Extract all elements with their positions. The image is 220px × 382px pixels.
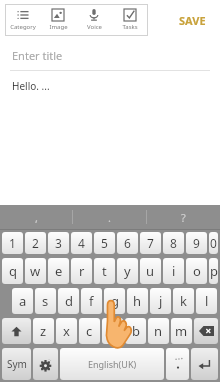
button[interactable]: l — [196, 288, 217, 314]
staticText: i — [172, 262, 176, 280]
button[interactable]: 7 — [140, 232, 161, 254]
button[interactable]: Backspace — [194, 318, 218, 344]
button[interactable]: f — [81, 288, 102, 314]
staticText: b — [132, 322, 140, 340]
staticText: o — [193, 262, 201, 280]
button[interactable]: Category — [5, 4, 40, 36]
button[interactable]: d — [58, 288, 79, 314]
staticText: t — [102, 262, 107, 280]
staticText: g — [111, 292, 119, 310]
staticText: l — [205, 292, 209, 310]
button[interactable]: Settings — [33, 348, 58, 380]
staticText: 6 — [124, 235, 131, 251]
button[interactable]: p — [209, 258, 218, 284]
staticText: 9 — [193, 235, 200, 251]
staticText: u — [146, 262, 155, 280]
staticText: q — [9, 262, 17, 280]
button[interactable]: b — [125, 318, 146, 344]
button[interactable]: Shift — [2, 318, 31, 344]
button[interactable]: 2 — [25, 232, 46, 254]
button[interactable]: k — [173, 288, 194, 314]
button[interactable]: g — [104, 288, 125, 314]
button[interactable]: 8 — [163, 232, 184, 254]
button[interactable]: e — [48, 258, 69, 284]
button[interactable]: Space — [60, 348, 164, 380]
staticText: y — [124, 262, 131, 280]
button[interactable]: 1 — [2, 232, 23, 254]
button[interactable]: Enter — [191, 348, 218, 380]
staticText: Image — [49, 23, 68, 31]
staticText: Category — [10, 23, 36, 31]
button[interactable]: Period — [166, 348, 189, 380]
button[interactable]: t — [94, 258, 115, 284]
staticText: , — [35, 210, 38, 225]
staticText: 8 — [170, 235, 177, 251]
staticText: d — [65, 292, 73, 310]
button[interactable]: 0 — [209, 232, 218, 254]
button[interactable]: r — [71, 258, 92, 284]
staticText: s — [42, 292, 49, 310]
staticText: ? — [181, 210, 186, 225]
button[interactable]: j — [150, 288, 171, 314]
button[interactable]: Image — [40, 4, 76, 36]
staticText: English(UK) — [88, 358, 137, 370]
button[interactable]: c — [79, 318, 100, 344]
staticText: k — [180, 292, 187, 310]
staticText: x — [63, 322, 70, 340]
staticText: Sym — [7, 357, 27, 371]
staticText: 4 — [78, 235, 85, 251]
staticText: Enter title — [12, 48, 63, 63]
button[interactable]: SAVE — [173, 7, 212, 34]
staticText: n — [154, 322, 163, 340]
button[interactable]: Voice — [76, 4, 112, 36]
button[interactable]: s — [35, 288, 56, 314]
button[interactable]: 4 — [71, 232, 92, 254]
staticText: f — [89, 292, 94, 310]
staticText: a — [19, 292, 27, 310]
button[interactable]: q — [2, 258, 23, 284]
staticText: m — [175, 322, 188, 340]
button[interactable]: i — [163, 258, 184, 284]
staticText: Voice — [87, 23, 102, 31]
staticText: e — [55, 262, 63, 280]
button[interactable]: ? — [147, 205, 220, 229]
button[interactable]: 5 — [94, 232, 115, 254]
staticText: 1 — [9, 235, 16, 251]
button[interactable]: Tasks — [112, 4, 148, 36]
button[interactable]: w — [25, 258, 46, 284]
button[interactable]: n — [148, 318, 169, 344]
staticText: j — [159, 292, 163, 310]
staticText: z — [40, 322, 47, 340]
button[interactable]: u — [140, 258, 161, 284]
button[interactable]: z — [33, 318, 54, 344]
staticText: c — [86, 322, 93, 340]
button[interactable]: 3 — [48, 232, 69, 254]
staticText: w — [30, 262, 41, 280]
button[interactable]: v — [102, 318, 123, 344]
staticText: . — [108, 210, 111, 225]
staticText: r — [79, 262, 85, 280]
button[interactable]: x — [56, 318, 77, 344]
staticText: h — [133, 292, 142, 310]
button[interactable]: 6 — [117, 232, 138, 254]
button[interactable]: Enter title — [0, 40, 220, 70]
staticText: 3 — [55, 235, 62, 251]
button[interactable]: h — [127, 288, 148, 314]
button[interactable]: Sym — [2, 348, 31, 380]
button[interactable]: o — [186, 258, 207, 284]
staticText: 5 — [101, 235, 108, 251]
button[interactable]: a — [12, 288, 33, 314]
staticText: SAVE — [179, 13, 206, 28]
staticText: 7 — [147, 235, 154, 251]
staticText: p — [210, 262, 218, 280]
staticText: 2 — [32, 235, 39, 251]
staticText: Tasks — [122, 23, 138, 31]
staticText: 0 — [210, 235, 217, 251]
button[interactable]: m — [171, 318, 192, 344]
button[interactable]: 9 — [186, 232, 207, 254]
button[interactable]: y — [117, 258, 138, 284]
button[interactable]: Hello. ... — [0, 71, 220, 101]
